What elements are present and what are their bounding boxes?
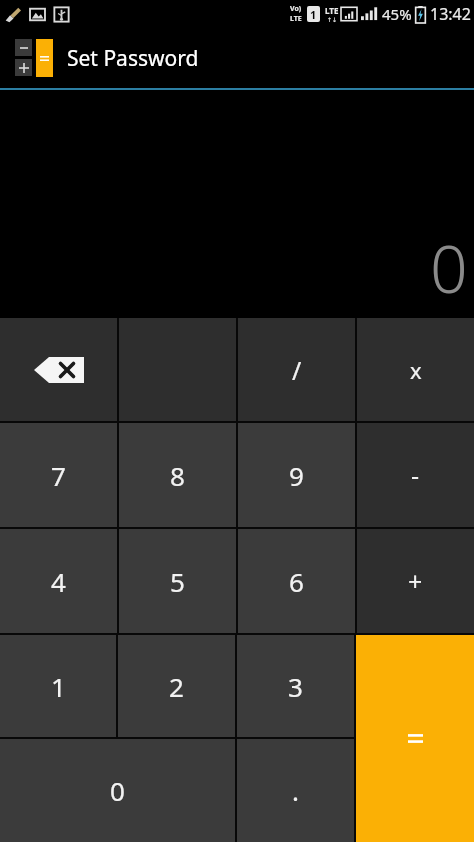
staticText: 4 (51, 564, 66, 599)
button[interactable]: + (357, 529, 474, 633)
staticText: 13:42 (430, 3, 471, 25)
button[interactable]: 5 (119, 529, 236, 633)
staticText: LTE (325, 5, 339, 16)
button[interactable]: 4 (0, 529, 117, 633)
staticText: 3 (288, 669, 303, 704)
staticText: Set Password (67, 44, 199, 73)
staticText: 0 (430, 222, 468, 312)
button[interactable]: 3 (237, 635, 354, 737)
button[interactable]: / (238, 318, 355, 421)
staticText: . (292, 773, 299, 808)
button[interactable]: 1 (0, 635, 116, 737)
button[interactable]: . (237, 739, 354, 842)
button[interactable]: - (357, 423, 474, 527)
staticText: 2 (169, 669, 184, 704)
button[interactable]: 0 (0, 739, 235, 842)
staticText: 7 (51, 458, 66, 493)
staticText: 5 (170, 564, 185, 599)
button[interactable]: 6 (238, 529, 355, 633)
staticText: 1 (310, 7, 317, 22)
staticText: - (411, 458, 420, 492)
button[interactable]: 8 (119, 423, 236, 527)
button[interactable]: Backspace (0, 318, 117, 421)
staticText: Vo) (290, 4, 302, 14)
staticText: 1 (51, 669, 66, 704)
button[interactable]: 2 (118, 635, 235, 737)
staticText: + (408, 564, 423, 598)
button[interactable]: Equals (356, 635, 474, 842)
staticText: 9 (289, 458, 304, 493)
staticText: LTE (290, 14, 302, 24)
button[interactable]: x (357, 318, 474, 421)
staticText: 45% (382, 4, 412, 24)
staticText: 8 (170, 458, 185, 493)
staticText: ↑↓ (327, 16, 338, 23)
button[interactable]: 9 (238, 423, 355, 527)
staticText: x (410, 355, 422, 385)
staticText: / (292, 353, 302, 387)
staticText: 6 (289, 564, 304, 599)
staticText: 0 (110, 773, 125, 808)
button[interactable]: 7 (0, 423, 117, 527)
